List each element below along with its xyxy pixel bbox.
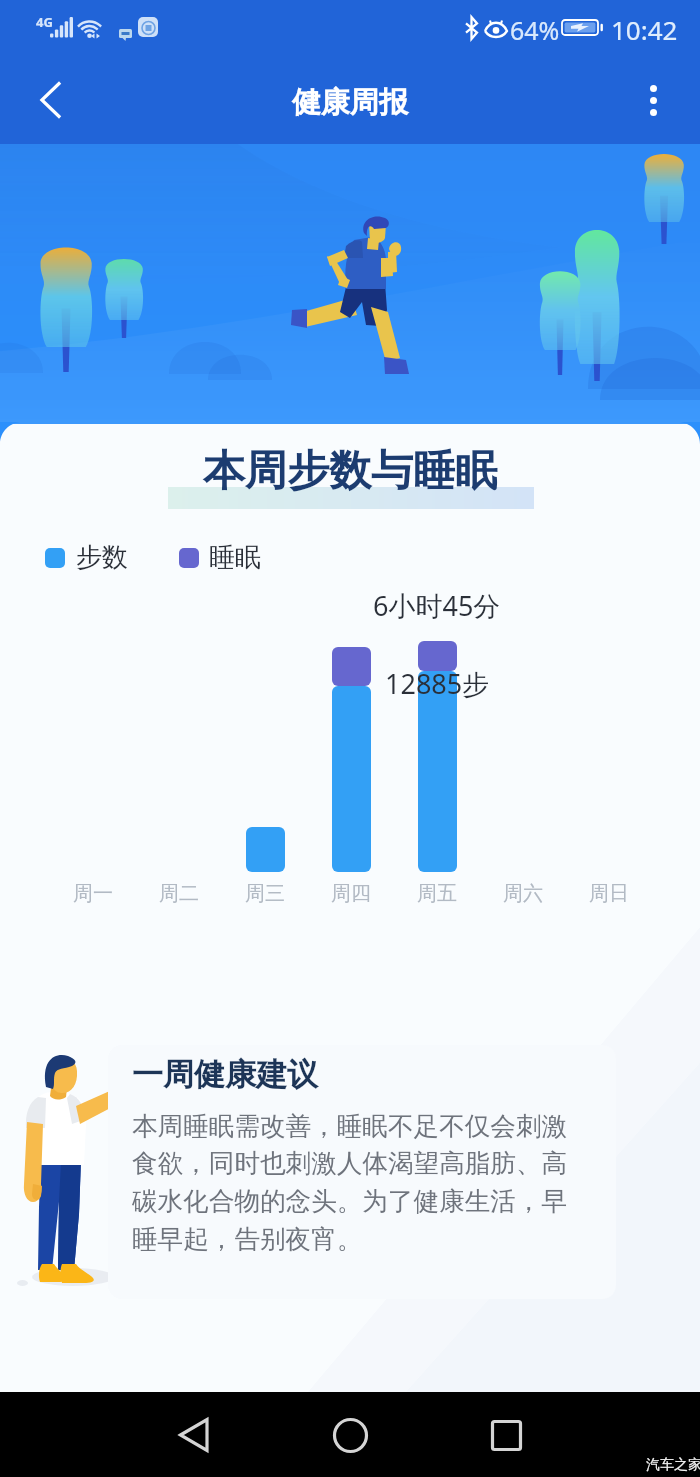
- staticText: 本周睡眠需改善，睡眠不足不仅会刺激食欲，同时也刺激人体渴望高脂肪、高碳水化合物的…: [132, 1110, 580, 1256]
- staticText: 健康周报: [292, 84, 408, 121]
- staticText: 周四: [331, 881, 371, 906]
- button[interactable]: More options: [627, 74, 679, 126]
- button[interactable]: Back: [22, 71, 80, 129]
- staticText: 10:42: [611, 12, 678, 47]
- staticText: 本周步数与睡眠: [203, 445, 497, 498]
- staticText: 4G: [36, 13, 53, 31]
- button[interactable]: Home: [318, 1403, 382, 1467]
- staticText: 6小时45分: [373, 587, 501, 624]
- button[interactable]: 睡眠: [179, 541, 261, 574]
- button[interactable]: Recent apps: [474, 1403, 538, 1467]
- staticText: 周三: [245, 881, 285, 906]
- staticText: 12885步: [385, 665, 490, 702]
- staticText: 周日: [589, 881, 629, 906]
- staticText: 步数: [76, 541, 128, 574]
- staticText: 一周健康建议: [132, 1055, 318, 1094]
- button[interactable]: 步数: [45, 541, 128, 574]
- button[interactable]: 一周健康建议: [108, 1045, 616, 1299]
- staticText: 汽车之家: [646, 1456, 700, 1474]
- staticText: 64%: [510, 13, 560, 47]
- staticText: 周六: [503, 881, 543, 906]
- staticText: 睡眠: [209, 541, 261, 574]
- staticText: 周二: [159, 881, 199, 906]
- staticText: 周五: [417, 881, 457, 906]
- button[interactable]: Back: [162, 1403, 226, 1467]
- staticText: 周一: [73, 881, 113, 906]
